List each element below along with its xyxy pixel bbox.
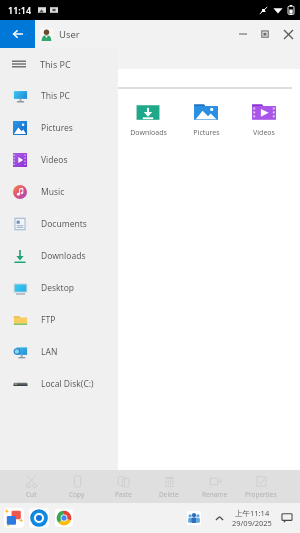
staticText: Pictures — [41, 122, 73, 134]
staticText: 29/09/2025 — [232, 518, 272, 528]
button[interactable]: Downloads — [10, 99, 54, 138]
button[interactable]: People — [184, 508, 204, 528]
button[interactable]: FTP — [0, 304, 118, 336]
staticText: Desktop — [41, 282, 75, 294]
button[interactable]: Downloads — [0, 240, 118, 272]
button[interactable]: Paste — [100, 470, 146, 503]
staticText: Documents — [41, 218, 87, 230]
button[interactable]: 上午11:14 — [232, 508, 272, 528]
button[interactable]: Desktop — [0, 272, 118, 304]
button[interactable]: Multi window — [3, 507, 25, 529]
button[interactable]: Documents — [0, 208, 118, 240]
staticText: User — [59, 28, 80, 41]
button[interactable]: Copy — [54, 470, 100, 503]
button[interactable]: Minimize — [232, 20, 254, 48]
button[interactable]: LAN — [0, 336, 118, 368]
staticText: 上午11:14 — [235, 508, 270, 518]
staticText: Properties — [245, 490, 277, 499]
button[interactable]: Pictures — [0, 112, 118, 144]
button[interactable]: Show hidden icons — [210, 509, 228, 527]
button[interactable]: Close — [276, 20, 300, 48]
button[interactable]: Notifications — [278, 509, 296, 527]
button[interactable]: Local Disk(C:) — [0, 368, 118, 400]
staticText: LAN — [41, 346, 58, 358]
button[interactable]: Cut — [8, 470, 54, 503]
button[interactable]: Chrome — [53, 507, 75, 529]
staticText: Downloads — [130, 128, 167, 138]
staticText: Local Disk(C:) — [41, 378, 94, 390]
staticText: Cut — [26, 490, 37, 499]
staticText: This PC — [41, 90, 70, 102]
staticText: Rename — [202, 490, 228, 499]
staticText: Videos — [41, 154, 68, 166]
staticText: Paste — [115, 490, 132, 499]
staticText: 11:14 — [8, 4, 32, 16]
button[interactable]: Rename — [192, 470, 238, 503]
staticText: Pictures — [193, 128, 220, 138]
button[interactable]: This PC — [0, 80, 118, 112]
button[interactable]: Videos — [0, 144, 118, 176]
button[interactable]: User — [40, 28, 80, 41]
button[interactable]: Restore — [254, 20, 276, 48]
staticText: This PC — [40, 58, 71, 70]
button[interactable]: Menu — [0, 48, 118, 80]
button[interactable]: Camera app — [28, 507, 50, 529]
button[interactable]: Videos — [242, 99, 286, 138]
staticText: FTP — [41, 314, 56, 326]
staticText: Downloads — [41, 250, 86, 262]
button[interactable]: Downloads — [126, 99, 170, 138]
staticText: Documents — [71, 128, 109, 138]
staticText: Videos — [253, 128, 275, 138]
button[interactable]: Documents — [68, 99, 112, 138]
staticText: Music — [41, 186, 65, 198]
button[interactable]: Music — [0, 176, 118, 208]
button[interactable]: Properties — [238, 470, 284, 503]
staticText: Downloads — [14, 128, 51, 138]
button[interactable]: Pictures — [184, 99, 228, 138]
staticText: Copy — [69, 490, 85, 499]
button[interactable]: Back — [0, 20, 35, 48]
button[interactable]: Delete — [146, 470, 192, 503]
staticText: Delete — [159, 490, 179, 499]
